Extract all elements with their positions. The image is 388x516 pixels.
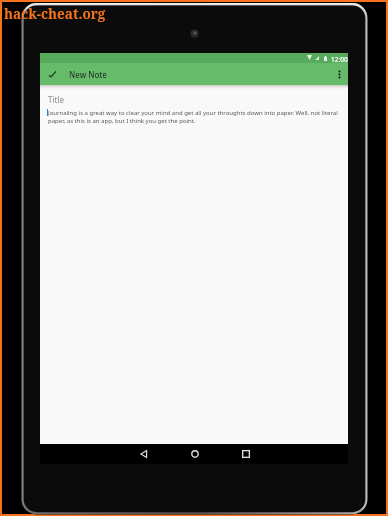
staticText: New Note <box>69 69 107 80</box>
button[interactable]: Home <box>169 444 220 464</box>
button[interactable]: Back <box>118 444 169 464</box>
staticText: hack-cheat.org <box>4 5 106 23</box>
staticText: Title <box>48 94 64 105</box>
button[interactable]: More options <box>330 63 348 85</box>
button[interactable]: Recent apps <box>220 444 271 464</box>
button[interactable]: Save note <box>40 63 65 85</box>
staticText: 12:00 <box>331 55 348 64</box>
staticText: Journaling is a great way to clear your … <box>48 109 338 125</box>
